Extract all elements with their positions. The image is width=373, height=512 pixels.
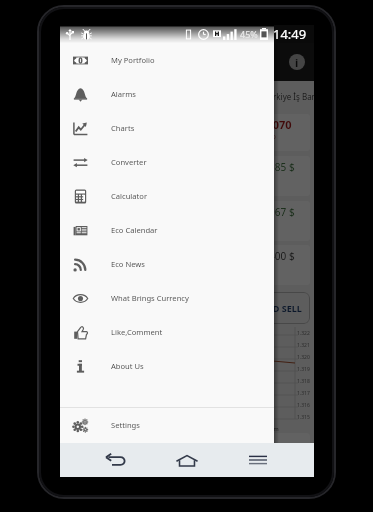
staticText: Settings — [111, 420, 140, 430]
staticText: Converter — [111, 157, 147, 167]
button[interactable]: Eco News — [60, 247, 274, 281]
staticText: Eco Calendar — [111, 225, 158, 235]
button[interactable]: Recents — [243, 445, 273, 475]
staticText: 5.5070 — [257, 117, 292, 132]
button[interactable]: Settings — [60, 408, 274, 442]
button[interactable]: Back — [101, 445, 131, 475]
staticText: About Us — [111, 361, 144, 371]
button[interactable]: Calculator — [60, 179, 274, 213]
staticText: Like,Comment — [111, 327, 163, 337]
button[interactable]: 7.2967 $ — [64, 201, 310, 241]
staticText: 1.317 — [297, 390, 310, 397]
button[interactable]: 5.5070 — [64, 114, 310, 151]
staticText: 1.319 — [297, 366, 310, 373]
staticText: 6.2385 $ — [255, 160, 295, 174]
button[interactable]: Alarms — [60, 77, 274, 111]
button[interactable]: 6.2385 $ — [64, 156, 310, 196]
staticText: Türkiye İş Bankası — [264, 91, 314, 102]
staticText: 1.321 — [297, 342, 310, 349]
staticText: 14:49 — [273, 25, 307, 43]
button[interactable]: My Portfolio — [60, 43, 274, 77]
staticText: 7.2967 $ — [255, 205, 295, 219]
button[interactable]: Like,Comment — [60, 315, 274, 349]
staticText: 45% — [240, 28, 258, 40]
staticText: 1.322 — [297, 330, 310, 337]
staticText: Charts — [111, 123, 135, 133]
staticText: 1.4400 $ — [255, 249, 295, 263]
staticText: Eco News — [111, 259, 145, 269]
button[interactable]: Info — [289, 54, 305, 70]
staticText: Previous Close — [243, 432, 281, 439]
staticText: ADD SELL — [260, 302, 302, 314]
staticText: 1.315 — [297, 414, 310, 421]
staticText: 12:30 am — [255, 425, 279, 432]
button[interactable]: Eco Calendar — [60, 213, 274, 247]
button[interactable]: Charts — [60, 111, 274, 145]
staticText: 0,0150 — [257, 133, 276, 141]
staticText: Calculator — [111, 191, 148, 201]
staticText: My Portfolio — [111, 55, 155, 65]
staticText: 1.318 — [297, 378, 310, 385]
button[interactable]: About Us — [60, 349, 274, 383]
button[interactable]: Converter — [60, 145, 274, 179]
button[interactable]: ADD SELL — [64, 292, 310, 324]
staticText: Alarms — [111, 89, 136, 99]
button[interactable]: 1.4400 $ — [64, 245, 310, 285]
staticText: 1.316 — [297, 402, 310, 409]
staticText: i — [295, 55, 299, 70]
button[interactable]: Home — [172, 445, 202, 475]
staticText: What Brings Currency — [111, 293, 189, 303]
button[interactable] — [64, 433, 310, 473]
staticText: 1.320 — [297, 354, 310, 361]
button[interactable]: What Brings Currency — [60, 281, 274, 315]
